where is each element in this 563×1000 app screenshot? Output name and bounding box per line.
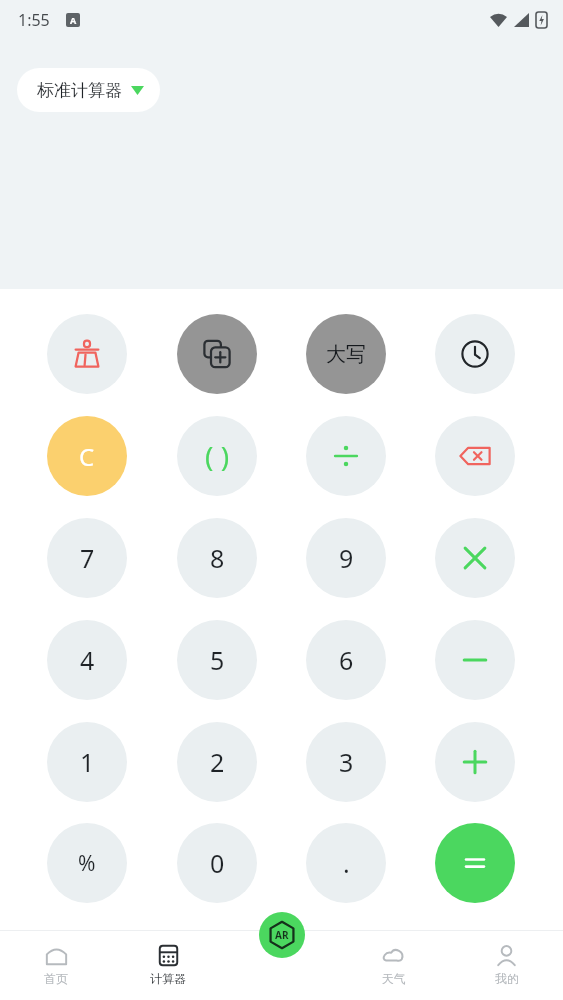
- other: Multiply: [460, 543, 490, 573]
- staticText: .: [343, 846, 350, 880]
- button[interactable]: ( ): [177, 416, 257, 496]
- staticText: 大写: [326, 342, 366, 367]
- staticText: 1:55: [18, 9, 50, 31]
- staticText: 6: [339, 643, 354, 677]
- button[interactable]: 标准计算器: [17, 68, 160, 112]
- button[interactable]: Clear history: [47, 314, 127, 394]
- staticText: 3: [339, 745, 354, 779]
- button[interactable]: 我的: [450, 930, 563, 1000]
- button[interactable]: Equals: [435, 823, 515, 903]
- staticText: 我的: [495, 971, 519, 986]
- button[interactable]: Divide: [306, 416, 386, 496]
- button[interactable]: 2: [177, 722, 257, 802]
- button[interactable]: 1: [47, 722, 127, 802]
- other: History: [460, 339, 490, 369]
- button[interactable]: 4: [47, 620, 127, 700]
- button[interactable]: 大写: [306, 314, 386, 394]
- button[interactable]: 3: [306, 722, 386, 802]
- staticText: A: [70, 14, 77, 26]
- staticText: AR: [275, 928, 289, 942]
- button[interactable]: 8: [177, 518, 257, 598]
- other: Clear history: [72, 339, 102, 369]
- staticText: 0: [210, 846, 225, 880]
- button[interactable]: 5: [177, 620, 257, 700]
- button[interactable]: C: [47, 416, 127, 496]
- staticText: 计算器: [150, 971, 186, 986]
- button[interactable]: Multiply: [435, 518, 515, 598]
- staticText: 5: [210, 643, 225, 677]
- button[interactable]: Backspace: [435, 416, 515, 496]
- other: Minus: [460, 645, 490, 675]
- button[interactable]: .: [306, 823, 386, 903]
- staticText: 首页: [44, 971, 68, 986]
- staticText: 1: [80, 745, 95, 779]
- button[interactable]: Plus: [435, 722, 515, 802]
- other: Equals: [460, 848, 490, 878]
- staticText: 标准计算器: [37, 80, 122, 101]
- staticText: 7: [80, 541, 95, 575]
- button[interactable]: %: [47, 823, 127, 903]
- button[interactable]: 0: [177, 823, 257, 903]
- button[interactable]: 天气: [337, 930, 450, 1000]
- other: Plus: [460, 747, 490, 777]
- other: Divide: [331, 441, 361, 471]
- button[interactable]: Copy: [177, 314, 257, 394]
- staticText: 2: [210, 745, 225, 779]
- staticText: 天气: [382, 971, 406, 986]
- staticText: 4: [80, 643, 95, 677]
- button[interactable]: 7: [47, 518, 127, 598]
- staticText: C: [79, 440, 95, 473]
- button[interactable]: 9: [306, 518, 386, 598]
- button[interactable]: 6: [306, 620, 386, 700]
- button[interactable]: History: [435, 314, 515, 394]
- staticText: %: [78, 849, 96, 878]
- button[interactable]: AR: [259, 912, 305, 958]
- other: Backspace: [458, 439, 492, 473]
- button[interactable]: 计算器: [112, 930, 224, 1000]
- staticText: 9: [339, 541, 354, 575]
- staticText: 8: [210, 541, 225, 575]
- button[interactable]: 首页: [0, 930, 112, 1000]
- staticText: ( ): [205, 437, 230, 475]
- other: Copy: [202, 339, 232, 369]
- button[interactable]: Minus: [435, 620, 515, 700]
